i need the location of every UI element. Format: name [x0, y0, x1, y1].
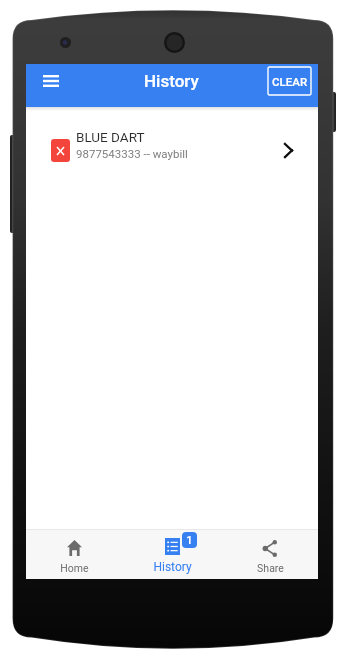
- staticText: History: [153, 560, 192, 574]
- staticText: History: [144, 71, 199, 91]
- button[interactable]: [26, 529, 123, 578]
- staticText: BLUE DART: [76, 129, 145, 145]
- staticText: 9877543333 -- waybill: [76, 147, 188, 160]
- staticText: CLEAR: [272, 75, 308, 88]
- button[interactable]: Open navigation menu: [35, 65, 67, 97]
- staticText: Share: [257, 562, 284, 574]
- staticText: 1: [186, 534, 193, 547]
- button[interactable]: CLEAR: [268, 67, 311, 95]
- staticText: Home: [60, 562, 89, 574]
- button[interactable]: [123, 529, 220, 578]
- button[interactable]: [26, 107, 318, 172]
- button[interactable]: [221, 529, 318, 578]
